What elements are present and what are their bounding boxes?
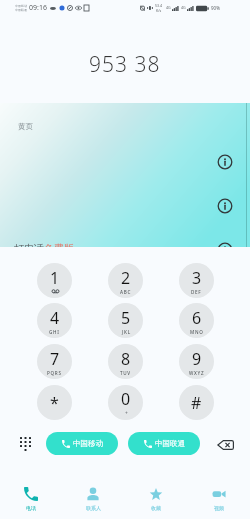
staticText: + bbox=[125, 410, 128, 417]
staticText: # bbox=[191, 392, 202, 414]
staticText: 6 bbox=[192, 307, 202, 329]
staticText: 0 bbox=[121, 388, 131, 410]
staticText: 中国移动 bbox=[15, 4, 27, 8]
staticText: 4G bbox=[181, 5, 186, 10]
staticText: 4G bbox=[166, 5, 171, 10]
staticText: 53.4 bbox=[155, 3, 163, 8]
staticText: 1 bbox=[50, 267, 60, 289]
staticText: 收藏 bbox=[151, 505, 161, 511]
staticText: GHI bbox=[49, 329, 60, 335]
staticText: 90% bbox=[211, 5, 220, 11]
button[interactable]: Info bbox=[217, 154, 233, 170]
staticText: 4 bbox=[50, 307, 60, 329]
staticText: JKL bbox=[122, 329, 131, 335]
button[interactable]: 中国移动 bbox=[46, 432, 118, 455]
staticText: ABC bbox=[120, 289, 132, 295]
staticText: 3 bbox=[192, 267, 202, 289]
staticText: 中国移动 bbox=[73, 439, 103, 448]
staticText: * bbox=[50, 392, 59, 414]
staticText: 电话 bbox=[26, 505, 36, 511]
button[interactable]: 7 bbox=[37, 344, 72, 379]
staticText: 中国联通 bbox=[15, 8, 27, 12]
staticText: 8 bbox=[121, 348, 131, 370]
button[interactable]: 4 bbox=[37, 303, 72, 338]
button[interactable]: 2 bbox=[108, 263, 143, 298]
staticText: 9 bbox=[192, 348, 202, 370]
staticText: 7 bbox=[50, 348, 60, 370]
button[interactable]: 6 bbox=[179, 303, 214, 338]
staticText: 打电话 bbox=[14, 242, 44, 247]
staticText: 5 bbox=[121, 307, 131, 329]
button[interactable]: 8 bbox=[108, 344, 143, 379]
button[interactable]: Dialpad bbox=[13, 430, 37, 458]
button[interactable]: 收藏 bbox=[124, 481, 187, 519]
staticText: 免费版 bbox=[44, 242, 74, 247]
staticText: K/s bbox=[156, 8, 162, 13]
button[interactable]: 中国联通 bbox=[128, 432, 200, 455]
button[interactable]: 联系人 bbox=[62, 481, 124, 519]
button[interactable]: 9 bbox=[179, 344, 214, 379]
staticText: PQRS bbox=[47, 370, 62, 376]
button[interactable]: 0 bbox=[108, 385, 143, 420]
button[interactable]: Info bbox=[217, 198, 233, 214]
button[interactable]: # bbox=[179, 385, 214, 420]
staticText: 09:16 bbox=[29, 3, 47, 13]
button[interactable]: 3 bbox=[179, 263, 214, 298]
staticText: 视频 bbox=[214, 505, 224, 511]
button[interactable]: 视频 bbox=[187, 481, 250, 519]
staticText: 2 bbox=[121, 267, 131, 289]
staticText: DEF bbox=[191, 289, 202, 295]
button[interactable]: Backspace bbox=[211, 431, 239, 459]
staticText: TUV bbox=[120, 370, 131, 376]
staticText: MNO bbox=[190, 329, 204, 335]
staticText: 中国联通 bbox=[155, 439, 185, 448]
staticText: 联系人 bbox=[86, 505, 101, 511]
button[interactable]: * bbox=[37, 385, 72, 420]
staticText: 黄页 bbox=[18, 122, 33, 131]
button[interactable]: Info bbox=[217, 242, 233, 247]
button[interactable]: 5 bbox=[108, 303, 143, 338]
staticText: 953 38 bbox=[89, 50, 161, 79]
staticText: WXYZ bbox=[189, 370, 205, 376]
button[interactable]: 电话 bbox=[0, 481, 62, 519]
button[interactable]: 1 bbox=[37, 263, 72, 298]
